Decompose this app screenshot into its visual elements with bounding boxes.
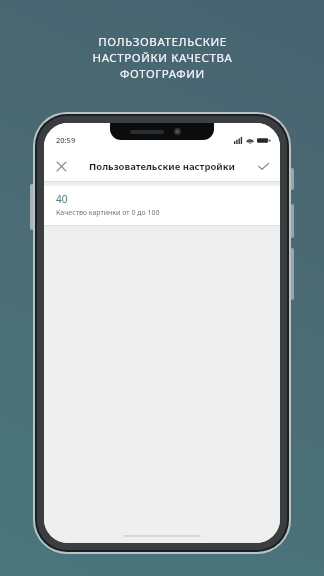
staticText: Качество картинки от 0 до 100	[56, 208, 160, 218]
button[interactable]: 40	[44, 186, 280, 225]
staticText: ПОЛЬЗОВАТЕЛЬСКИЕ НАСТРОЙКИ КАЧЕСТВА ФОТО…	[92, 34, 233, 82]
staticText: Пользовательские настройки	[89, 160, 235, 173]
staticText: 40	[56, 192, 68, 206]
button[interactable]: Save	[252, 155, 274, 177]
button[interactable]: Close	[50, 155, 72, 177]
staticText: 20:59	[56, 135, 76, 145]
